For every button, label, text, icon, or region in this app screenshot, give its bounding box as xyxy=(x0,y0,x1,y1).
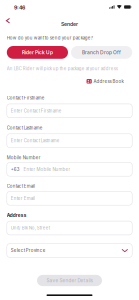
button[interactable]: Select Province xyxy=(7,244,132,257)
staticText: +63 xyxy=(11,167,20,172)
staticText: Sender xyxy=(61,21,78,27)
button[interactable]: Enter Email xyxy=(7,191,132,205)
staticText: An LBC Rider will pick up the package at… xyxy=(7,66,118,71)
button[interactable]: Unit/ Blk No, Street xyxy=(7,221,132,235)
staticText: Select Province xyxy=(11,248,46,253)
button[interactable]: Back xyxy=(2,15,13,26)
staticText: Enter Mobile Number xyxy=(23,167,70,172)
staticText: Contact Email xyxy=(7,183,35,189)
staticText: Mobile Number xyxy=(7,155,41,160)
staticText: Rider Pick Up xyxy=(22,49,53,55)
button[interactable]: Address Book xyxy=(86,77,123,85)
button[interactable]: +63 xyxy=(7,162,132,176)
staticText: Contact Firstname xyxy=(7,95,45,101)
staticText: Enter Email xyxy=(11,196,35,201)
staticText: Save Sender Details xyxy=(46,278,92,283)
staticText: Enter Contact Firstname xyxy=(11,108,62,113)
button[interactable]: Save Sender Details xyxy=(37,275,102,286)
staticText: Address xyxy=(7,213,27,218)
staticText: 9:46 xyxy=(14,4,25,11)
button[interactable]: Enter Contact Lastname xyxy=(7,134,132,148)
staticText: Address Book xyxy=(93,79,123,84)
button[interactable]: Enter Contact Firstname xyxy=(7,104,132,118)
button[interactable]: Branch Drop Off xyxy=(71,46,132,59)
staticText: Unit/ Blk No, Street xyxy=(11,225,50,231)
staticText: Enter Contact Lastname xyxy=(11,138,60,143)
staticText: How do you want to send your package? xyxy=(7,35,93,41)
button[interactable]: Rider Pick Up xyxy=(7,46,68,59)
staticText: Branch Drop Off xyxy=(82,49,121,55)
staticText: Contact Lastname xyxy=(7,125,43,130)
